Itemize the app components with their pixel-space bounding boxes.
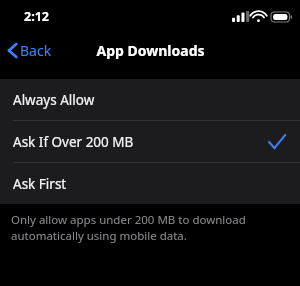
staticText: Back — [20, 41, 52, 60]
button[interactable]: Back — [0, 37, 60, 64]
staticText: Only allow apps under 200 MB to download — [11, 212, 246, 228]
button[interactable]: Always Allow — [0, 79, 300, 120]
staticText: Ask First — [13, 175, 286, 193]
button[interactable]: Ask First — [0, 163, 300, 204]
staticText: Ask If Over 200 MB — [13, 133, 268, 151]
button[interactable]: Ask If Over 200 MB — [0, 121, 300, 162]
staticText: 2:12 — [24, 8, 49, 25]
staticText: Always Allow — [13, 91, 286, 109]
staticText: automatically using mobile data. — [11, 228, 187, 244]
staticText: App Downloads — [96, 41, 205, 60]
